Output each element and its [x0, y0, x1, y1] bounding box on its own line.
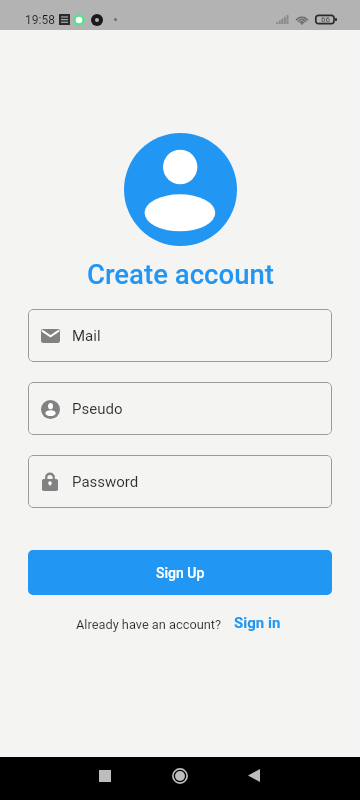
button[interactable]: Home [156, 754, 204, 797]
button[interactable]: Pseudo [28, 382, 332, 435]
button[interactable]: Back [230, 754, 278, 797]
staticText: Pseudo [72, 400, 123, 418]
staticText: Mail [72, 327, 101, 345]
button[interactable]: Mail [28, 309, 332, 362]
staticText: 19:58 [25, 13, 55, 27]
staticText: Sign Up [156, 565, 205, 581]
staticText: Already have an account? [76, 617, 222, 632]
button[interactable]: Sign in [234, 614, 281, 632]
button[interactable]: Sign Up [28, 550, 332, 595]
staticText: Create account [87, 258, 274, 290]
staticText: Password [72, 473, 139, 491]
button[interactable]: Recent apps [81, 754, 129, 797]
staticText: 66 [321, 15, 330, 24]
button[interactable]: Password [28, 455, 332, 508]
staticText: Sign in [234, 614, 281, 632]
